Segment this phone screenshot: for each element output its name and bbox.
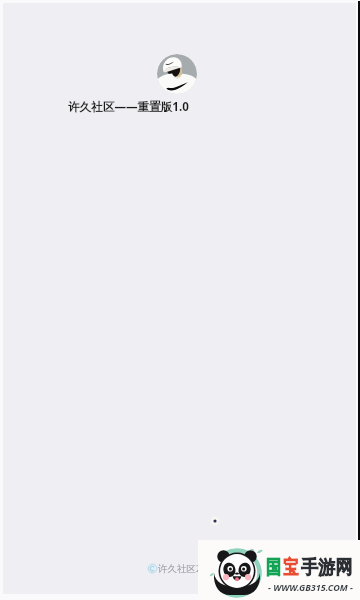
staticText: 许久社区——重置版1.0	[68, 99, 189, 115]
staticText: 许久社区2021	[158, 562, 218, 575]
staticText: 宝	[283, 555, 298, 579]
button[interactable]: 许久社区2021	[147, 562, 218, 575]
staticText: 国	[266, 555, 281, 579]
staticText: - WWW.GB315.COM -	[268, 581, 353, 593]
staticText: 手游网	[301, 556, 352, 580]
button[interactable]: Avatar	[157, 54, 197, 94]
